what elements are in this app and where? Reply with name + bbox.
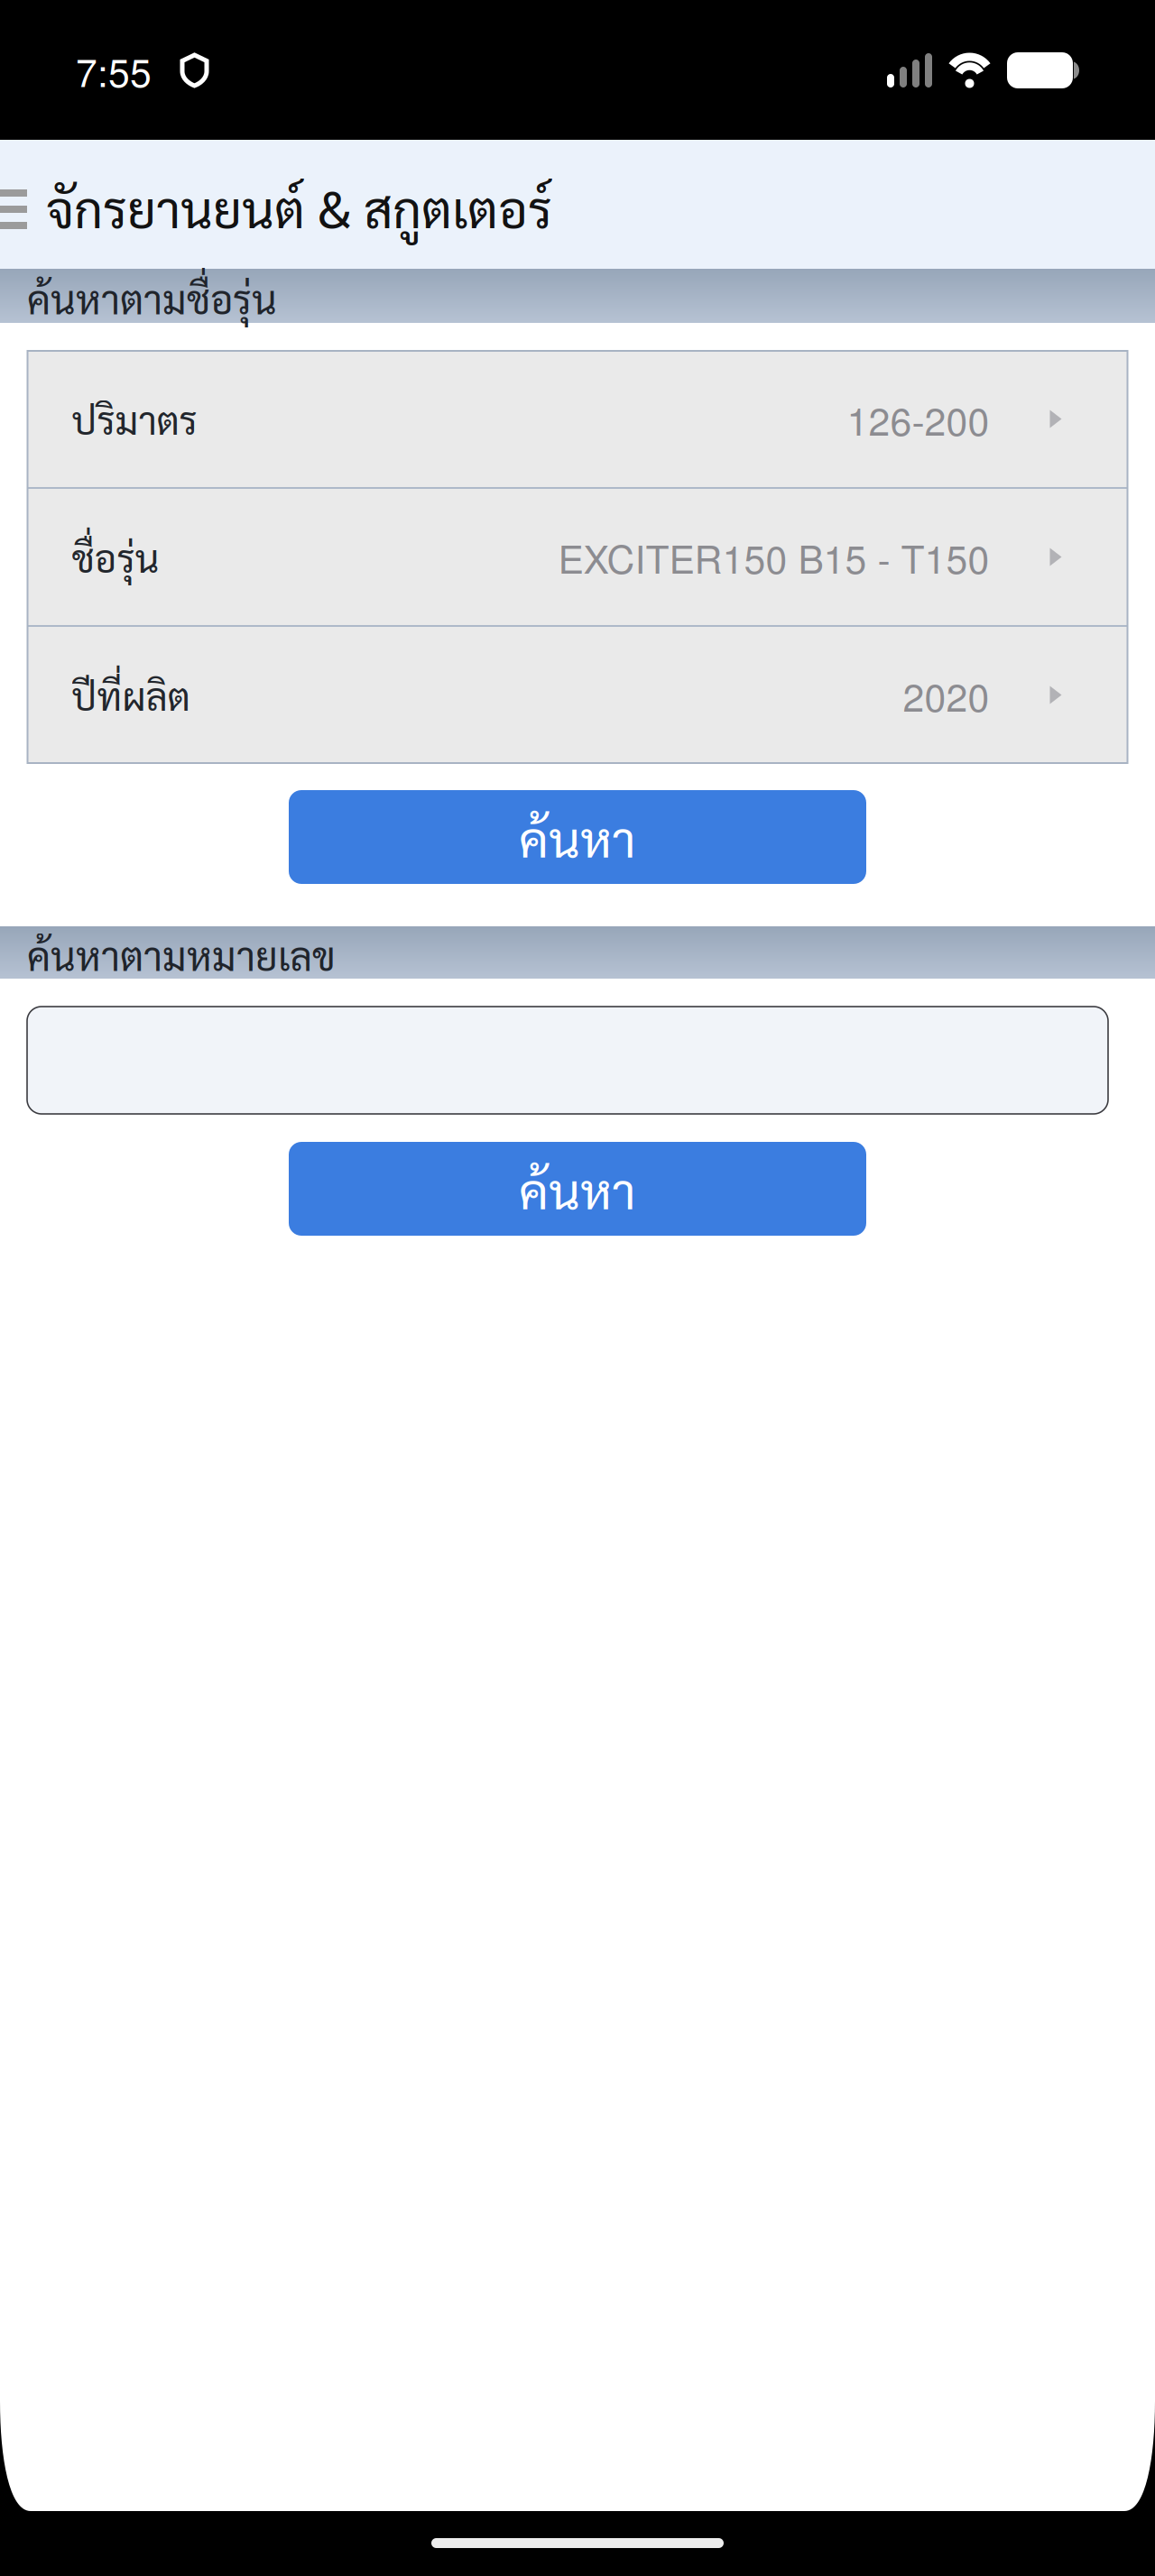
staticText: ชื่อรุ่น <box>72 532 159 582</box>
staticText: ค้นหา <box>519 1157 636 1221</box>
button[interactable]: ค้นหา <box>289 790 866 884</box>
button[interactable]: ค้นหา <box>289 1142 866 1236</box>
staticText: ปีที่ผลิต <box>72 670 190 720</box>
staticText: ปริมาตร <box>72 394 197 444</box>
staticText: 126-200 <box>847 391 989 447</box>
button[interactable]: ปริมาตร <box>28 351 1127 487</box>
button[interactable]: ปีที่ผลิต <box>28 627 1127 763</box>
staticText: EXCITER150 B15 - T150 <box>558 529 989 585</box>
staticText: ค้นหาตามหมายเลข <box>27 929 336 980</box>
staticText: จักรยานยนต์ & สกูตเตอร์ <box>46 174 552 240</box>
staticText: 7:55 <box>76 43 152 98</box>
button[interactable]: Menu <box>0 140 27 269</box>
staticText: ค้นหา <box>519 805 636 869</box>
staticText: 2020 <box>903 667 989 723</box>
staticText: ค้นหาตามชื่อรุ่น <box>27 273 277 323</box>
button[interactable]: ชื่อรุ่น <box>28 489 1127 625</box>
